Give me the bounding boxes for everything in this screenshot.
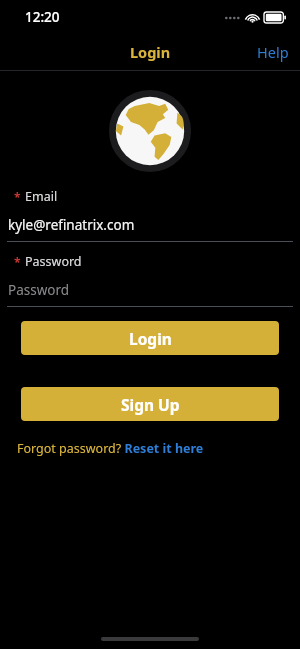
staticText: Email [25, 188, 58, 205]
staticText: 12:20 [25, 8, 60, 26]
staticText: Forgot password? Reset it here [17, 440, 204, 457]
button[interactable]: Login [21, 321, 279, 355]
staticText: * [14, 254, 21, 270]
button[interactable]: Help [247, 38, 300, 66]
staticText: Help [257, 42, 289, 62]
staticText: kyle@refinatrix.com [8, 216, 135, 234]
button[interactable]: Forgot password? Reset it here [17, 440, 204, 457]
staticText: Sign Up [121, 394, 180, 415]
staticText: Password [8, 281, 70, 299]
staticText: Login [129, 328, 172, 349]
button[interactable]: Login [126, 38, 175, 66]
button[interactable]: Sign Up [21, 387, 279, 421]
staticText: Password [25, 253, 82, 270]
staticText: * [14, 189, 21, 205]
staticText: Login [130, 42, 171, 62]
